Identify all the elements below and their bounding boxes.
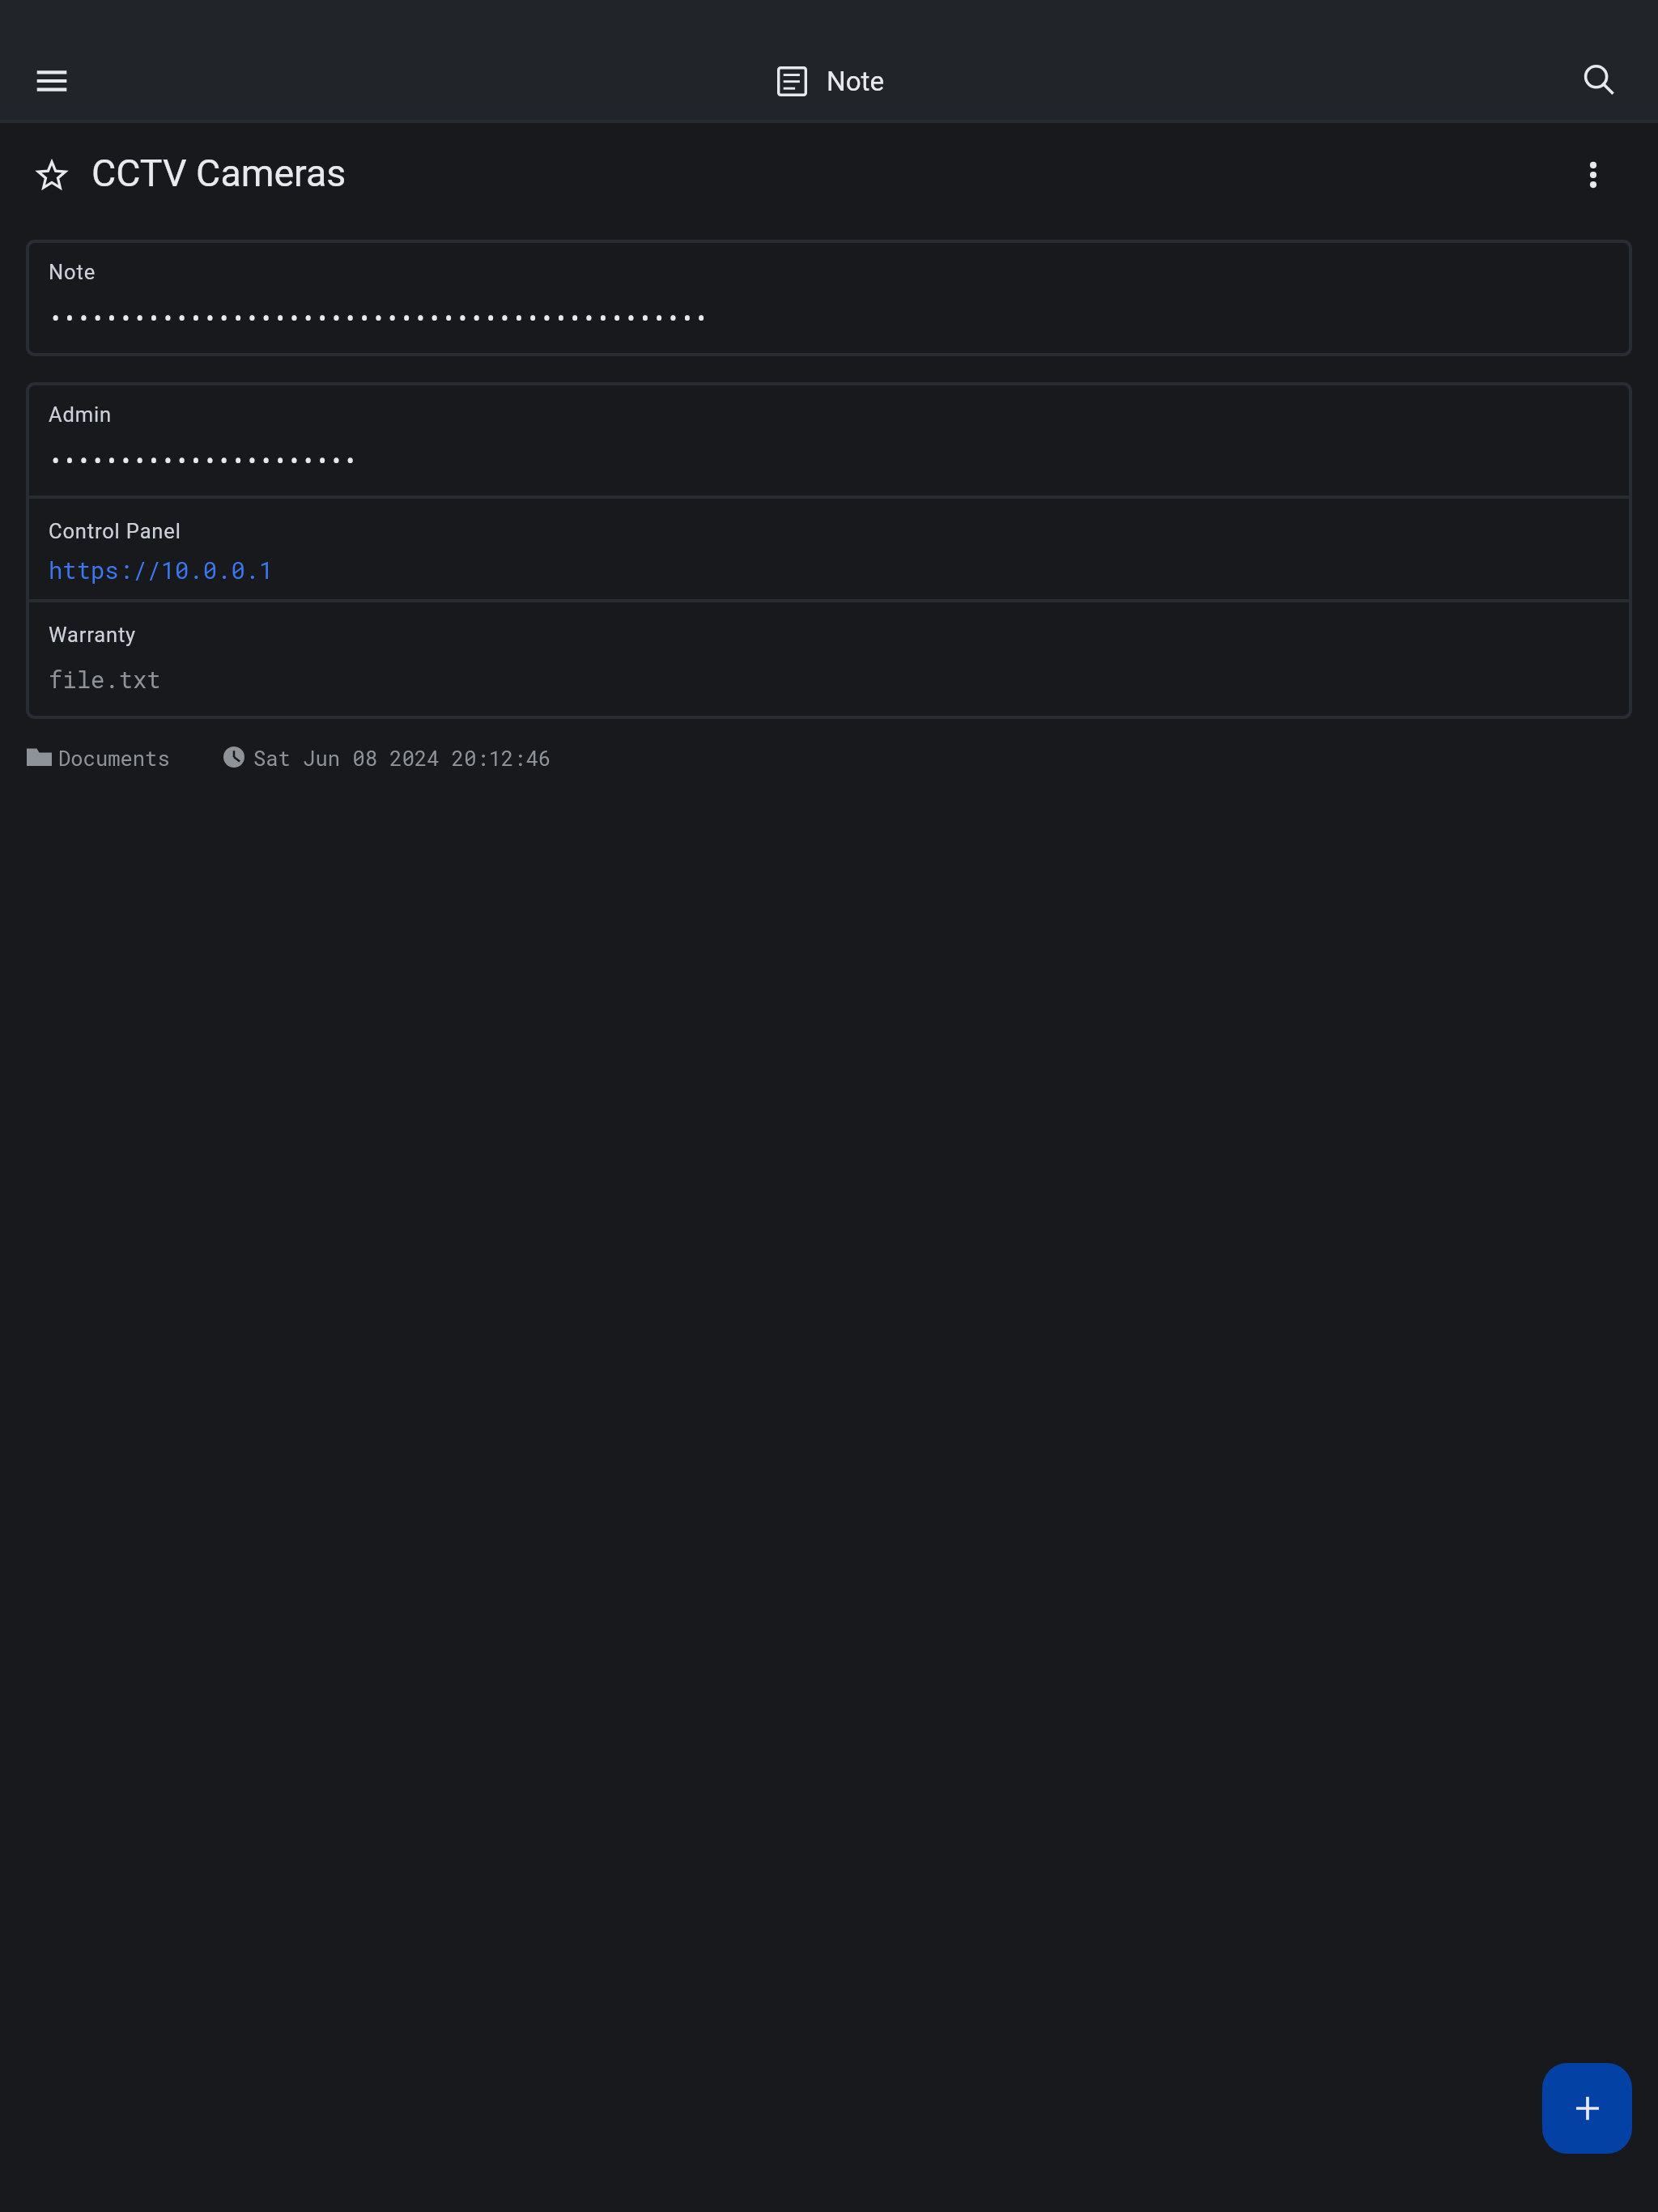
button[interactable]: Note	[26, 240, 1632, 356]
staticText: Control Panel	[49, 519, 181, 543]
staticText: https://10.0.0.1	[49, 555, 274, 585]
button[interactable]: Search	[1562, 44, 1637, 118]
staticText: Admin	[49, 402, 112, 427]
button[interactable]: Warranty	[26, 599, 1632, 719]
staticText: Warranty	[49, 623, 137, 647]
staticText: Documents	[58, 744, 170, 772]
button[interactable]: Add item	[1542, 2063, 1632, 2154]
staticText: Note	[49, 260, 96, 284]
staticText: CCTV Cameras	[91, 151, 346, 195]
staticText: Sat Jun 08 2024 20:12:46	[253, 744, 551, 772]
staticText: Note	[827, 66, 885, 97]
button[interactable]: More options	[1558, 139, 1629, 211]
staticText: ••••••••••••••••••••••••••••••••••••••••…	[49, 303, 708, 334]
staticText: ••••••••••••••••••••••	[49, 445, 358, 476]
button[interactable]: Control Panel	[26, 496, 1632, 599]
button[interactable]: Add to favorites	[23, 146, 81, 204]
button[interactable]: Open navigation menu	[15, 44, 89, 118]
button[interactable]: Admin	[26, 382, 1632, 496]
staticText: file.txt	[49, 664, 161, 695]
